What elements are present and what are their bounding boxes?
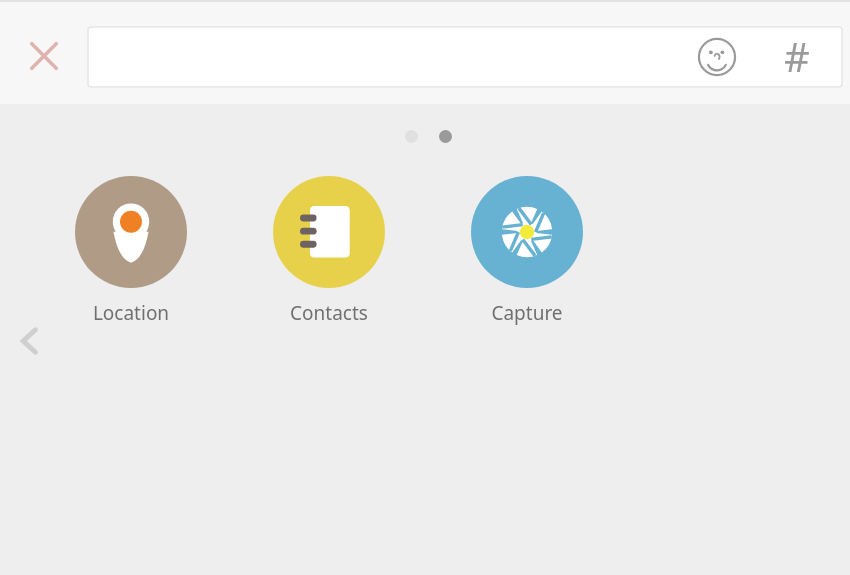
staticText: # xyxy=(784,29,810,83)
button[interactable]: Insert emoji xyxy=(691,31,743,83)
button[interactable]: Location xyxy=(61,162,201,340)
button[interactable]: Hashtag xyxy=(770,29,824,83)
button[interactable] xyxy=(439,130,452,143)
staticText: Capture xyxy=(457,300,597,330)
button[interactable]: Previous page xyxy=(4,315,56,367)
button[interactable]: Contacts xyxy=(259,162,399,340)
staticText: Contacts xyxy=(259,300,399,330)
button[interactable] xyxy=(405,130,418,143)
button[interactable]: Close xyxy=(16,28,72,84)
staticText: Location xyxy=(61,300,201,330)
button[interactable]: Capture xyxy=(457,162,597,340)
button[interactable] xyxy=(88,27,842,87)
